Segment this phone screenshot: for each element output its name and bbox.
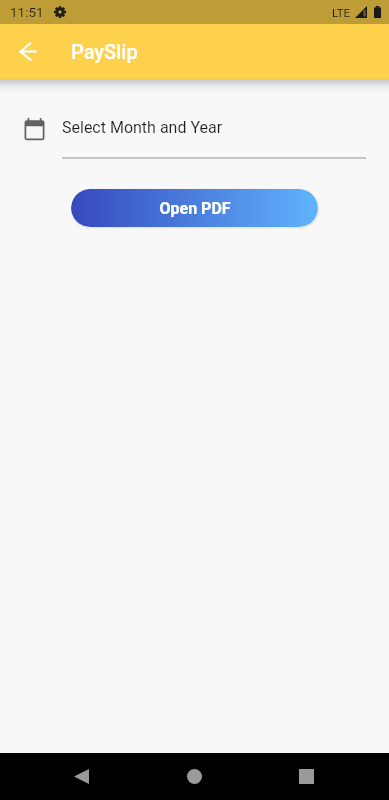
button[interactable]: Back <box>0 24 56 79</box>
button[interactable]: Back <box>58 753 105 800</box>
staticText: LTE <box>332 6 351 19</box>
staticText: Open PDF <box>159 199 231 218</box>
staticText: Select Month and Year <box>62 118 223 137</box>
button[interactable]: Select Month and Year <box>0 118 389 159</box>
button[interactable]: Recent apps <box>283 753 330 800</box>
staticText: PaySlip <box>71 40 138 63</box>
button[interactable]: Home <box>171 753 218 800</box>
staticText: 11:51 <box>10 4 44 20</box>
button[interactable]: Open PDF <box>71 189 318 227</box>
